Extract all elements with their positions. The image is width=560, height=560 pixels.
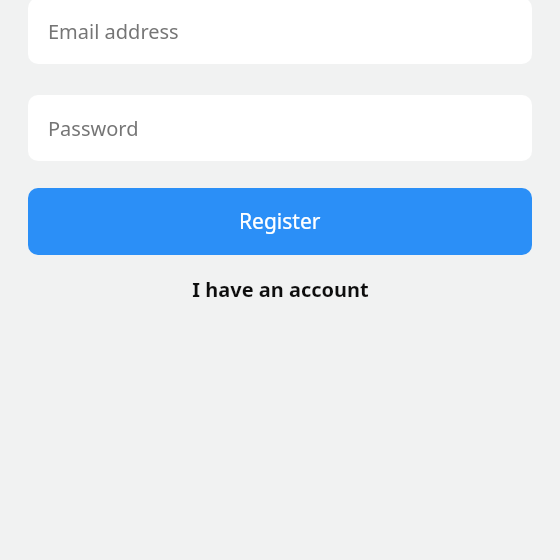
button[interactable]: Register [28, 188, 532, 255]
staticText: Register [239, 207, 321, 236]
staticText: I have an account [192, 276, 369, 303]
staticText: Email address [48, 18, 179, 45]
button[interactable]: Email address [28, 0, 532, 64]
staticText: Password [48, 115, 139, 142]
button[interactable]: I have an account [28, 268, 532, 311]
button[interactable]: Password [28, 95, 532, 161]
